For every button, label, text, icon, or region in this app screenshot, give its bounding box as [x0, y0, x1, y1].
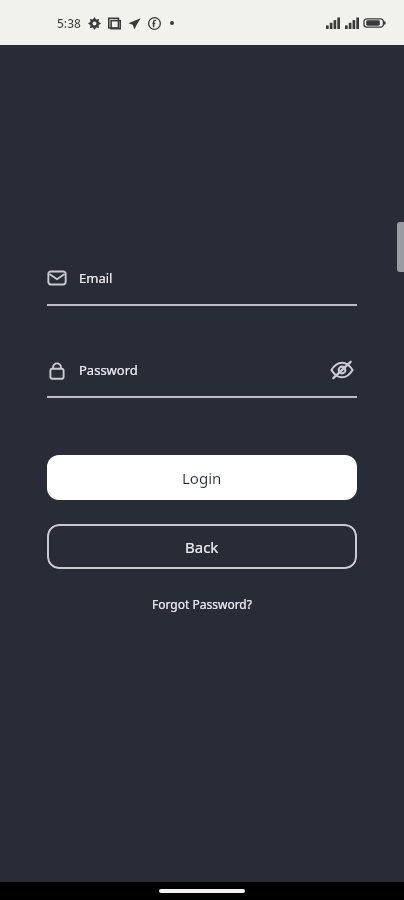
button[interactable]: Show password [327, 356, 357, 384]
staticText: Forgot Password? [152, 596, 252, 612]
staticText: 5:38 [57, 15, 81, 31]
button[interactable]: Back [47, 524, 357, 569]
button[interactable]: Password [47, 356, 357, 398]
button[interactable]: Email [47, 264, 357, 306]
button[interactable]: Login [47, 455, 357, 500]
button[interactable]: Forgot Password? [47, 596, 357, 612]
staticText: Email [79, 269, 113, 287]
staticText: Login [182, 468, 222, 488]
staticText: Password [79, 361, 138, 379]
staticText: Back [185, 537, 219, 557]
